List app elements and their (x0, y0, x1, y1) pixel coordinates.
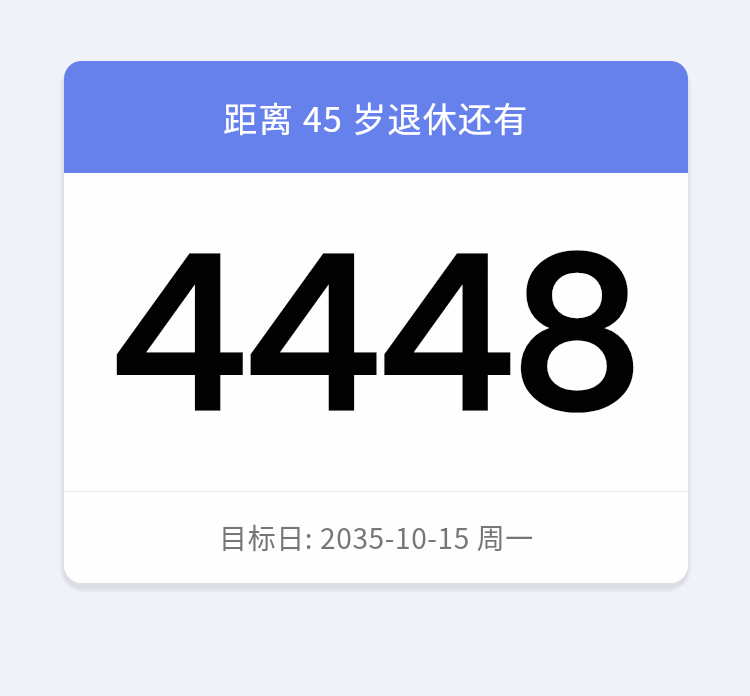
staticText: 4448 (113, 204, 640, 461)
button[interactable]: 距离 45 岁退休还有 (64, 61, 688, 583)
staticText: 距离 45 岁退休还有 (223, 93, 529, 142)
staticText: 4448 (113, 204, 640, 461)
staticText: 目标日: 2035-10-15 周一 (219, 517, 534, 558)
